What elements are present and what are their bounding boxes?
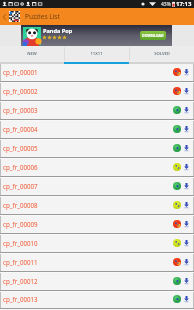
button[interactable]: SOLVED [129, 46, 194, 62]
button[interactable]: cp_fr_00006 [1, 159, 193, 176]
button[interactable]: 11X11 [64, 46, 129, 62]
button[interactable]: DOWNLOAD [140, 31, 166, 40]
button[interactable]: cp_fr_00011 [1, 254, 193, 271]
button[interactable]: cp_fr_00004 [1, 121, 193, 138]
button[interactable]: cp_fr_00001 [1, 64, 193, 81]
staticText: cp_fr_00011 [3, 258, 38, 266]
staticText: cp_fr_00003 [3, 106, 38, 114]
staticText: SOLVED [154, 51, 170, 57]
staticText: cp_fr_00002 [3, 87, 38, 95]
staticText: cp_fr_00012 [3, 277, 38, 285]
staticText: cp_fr_00009 [3, 220, 38, 228]
button[interactable]: NEW [0, 46, 64, 62]
staticText: Puzzles List [25, 12, 60, 21]
staticText: cp_fr_00006 [3, 163, 38, 171]
button[interactable]: Download [182, 125, 190, 133]
staticText: 17:13 [176, 0, 192, 8]
staticText: cp_fr_00010 [3, 239, 38, 247]
button[interactable]: Download [182, 87, 190, 95]
button[interactable]: cp_fr_00002 [1, 83, 193, 100]
staticText: 43% [161, 1, 171, 8]
button[interactable]: cp_fr_00012 [1, 273, 193, 290]
button[interactable]: Back [0, 12, 9, 21]
staticText: 11X11 [90, 51, 103, 57]
staticText: DOWNLOAD [142, 33, 164, 38]
staticText: cp_fr_00007 [3, 182, 38, 190]
button[interactable]: cp_fr_00009 [1, 216, 193, 233]
staticText: cp_fr_00005 [3, 144, 38, 152]
button[interactable]: Download [182, 220, 190, 228]
staticText: cp_fr_00004 [3, 125, 38, 133]
button[interactable]: Panda Pop [21, 25, 172, 46]
button[interactable]: cp_fr_00008 [1, 197, 193, 214]
button[interactable]: cp_fr_00013 [1, 292, 193, 308]
button[interactable]: Download [182, 144, 190, 152]
button[interactable]: Download [182, 163, 190, 171]
staticText: NEW [27, 51, 37, 57]
button[interactable]: Download [182, 68, 190, 76]
button[interactable]: Download [182, 182, 190, 190]
staticText: cp_fr_00008 [3, 201, 38, 209]
staticText: Panda Pop [43, 27, 73, 35]
button[interactable]: Download [182, 106, 190, 114]
button[interactable]: cp_fr_00007 [1, 178, 193, 195]
button[interactable]: Download [182, 201, 190, 209]
button[interactable]: cp_fr_00003 [1, 102, 193, 119]
staticText: cp_fr_00001 [3, 68, 38, 76]
button[interactable]: Download [182, 258, 190, 266]
button[interactable]: Download [182, 295, 190, 303]
button[interactable]: cp_fr_00005 [1, 140, 193, 157]
staticText: cp_fr_00013 [3, 295, 38, 303]
button[interactable]: Download [182, 239, 190, 247]
button[interactable]: cp_fr_00010 [1, 235, 193, 252]
button[interactable]: Download [182, 277, 190, 285]
